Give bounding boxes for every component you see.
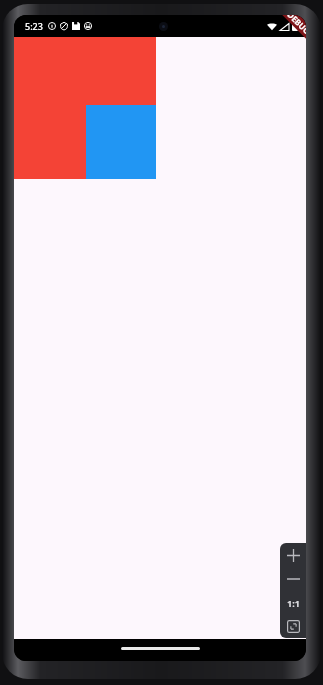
staticText: DEBUG [285,15,306,36]
button[interactable]: Zoom out [280,567,306,591]
button[interactable]: 1:1 [280,591,306,615]
staticText: 5:23 [25,20,43,32]
button[interactable]: Zoom in [280,543,306,567]
button[interactable]: Fit to screen [280,615,306,638]
staticText: 1:1 [287,597,300,609]
